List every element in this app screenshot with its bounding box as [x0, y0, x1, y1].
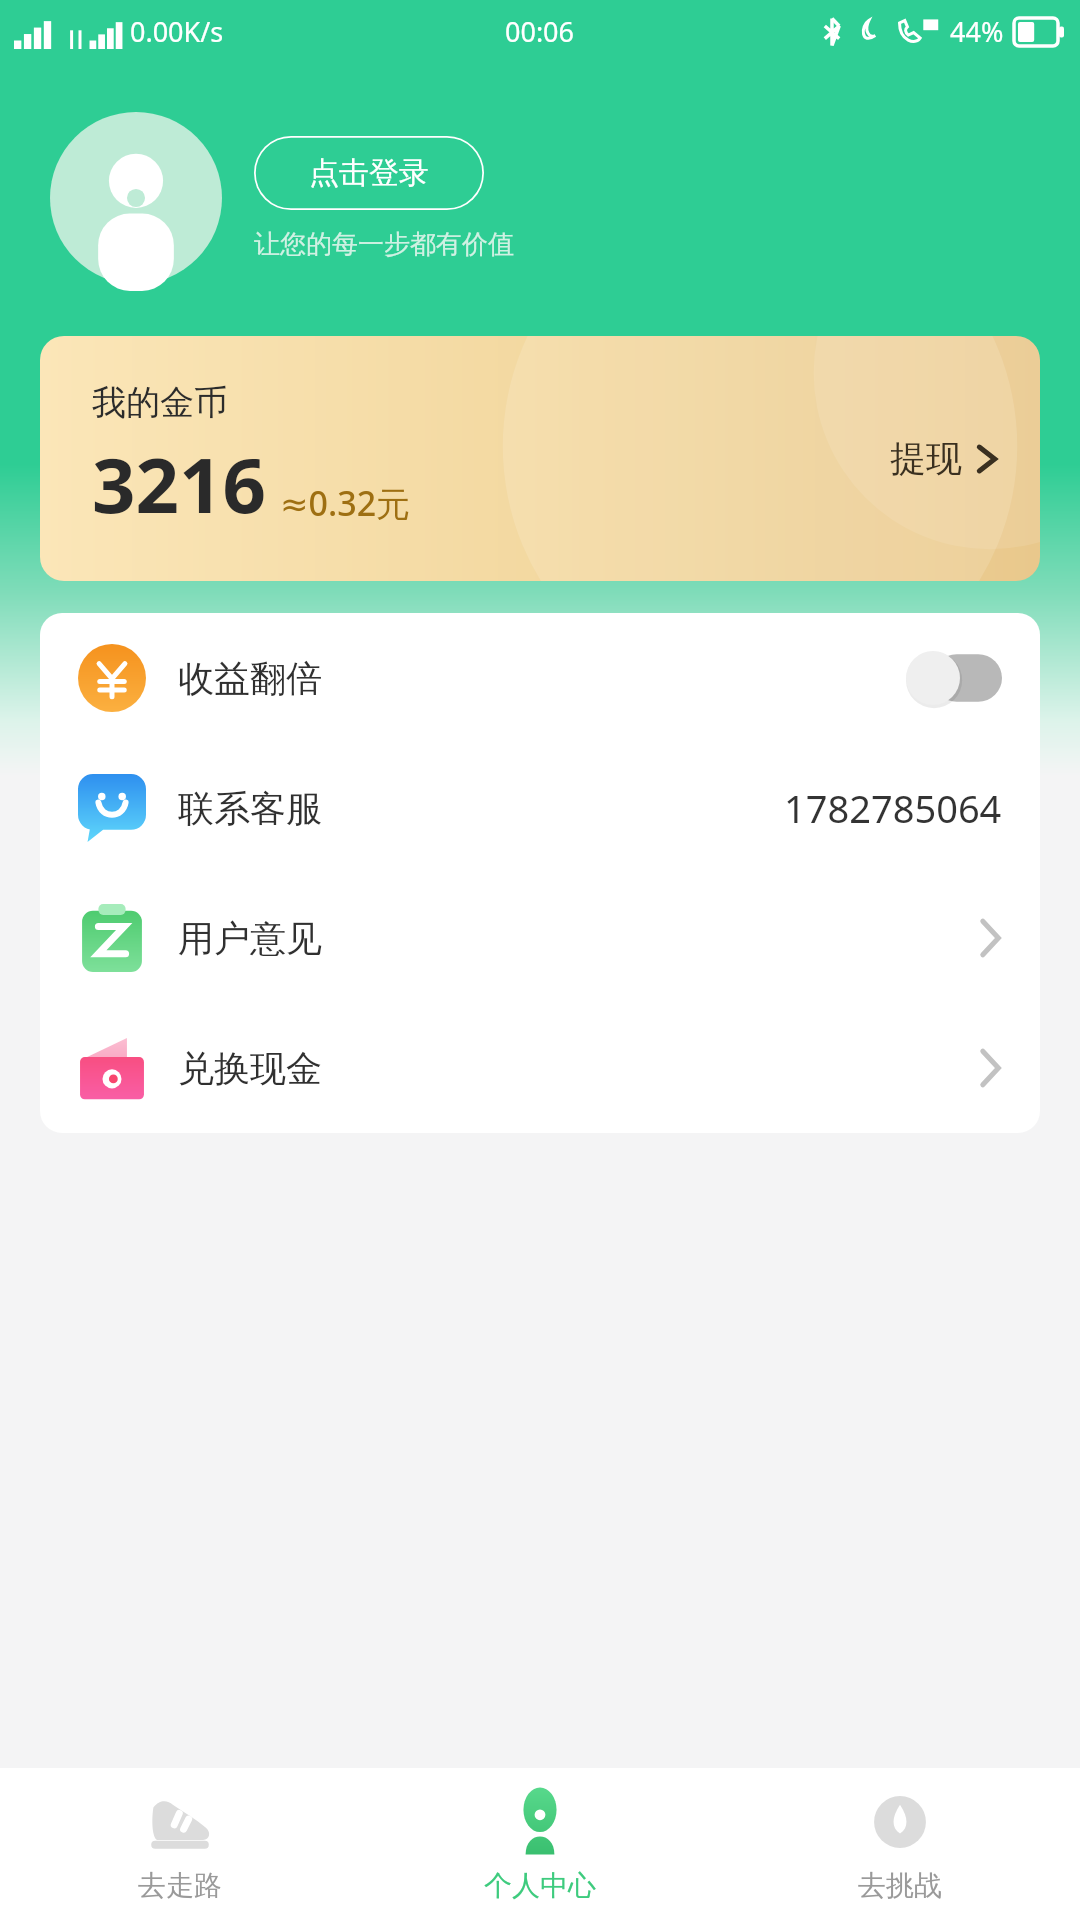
button[interactable]: 提现 — [882, 428, 1006, 489]
staticText: 1782785064 — [784, 782, 1002, 834]
button[interactable]: 联系客服 — [40, 743, 1040, 873]
staticText: 0.00K/s — [130, 13, 224, 50]
staticText: 联系客服 — [178, 786, 322, 831]
staticText: 44% — [950, 13, 1004, 50]
staticText: 去走路 — [138, 1868, 222, 1903]
button[interactable]: 点击登录 — [254, 136, 484, 210]
button[interactable]: 兑换现金 — [40, 1003, 1040, 1133]
staticText: 收益翻倍 — [178, 656, 322, 701]
button[interactable]: 用户意见 — [40, 873, 1040, 1003]
staticText: 提现 — [890, 436, 962, 481]
staticText: 3216 — [92, 432, 266, 536]
button[interactable]: 去挑战 — [720, 1768, 1080, 1920]
button[interactable]: 去走路 — [0, 1768, 360, 1920]
staticText: 点击登录 — [309, 154, 429, 192]
staticText: 兑换现金 — [178, 1046, 322, 1091]
staticText: 让您的每一步都有价值 — [254, 228, 514, 261]
staticText: 00:06 — [505, 13, 575, 50]
button[interactable]: 我的金币 — [40, 336, 1040, 581]
staticText: 去挑战 — [858, 1868, 942, 1903]
button[interactable]: 个人中心 — [360, 1768, 720, 1920]
staticText: ≈0.32元 — [280, 480, 411, 526]
staticText: 用户意见 — [178, 916, 322, 961]
other: Avatar — [50, 112, 222, 284]
staticText: 我的金币 — [92, 381, 228, 424]
button[interactable]: 收益翻倍 — [40, 613, 1040, 743]
staticText: 个人中心 — [484, 1868, 596, 1903]
